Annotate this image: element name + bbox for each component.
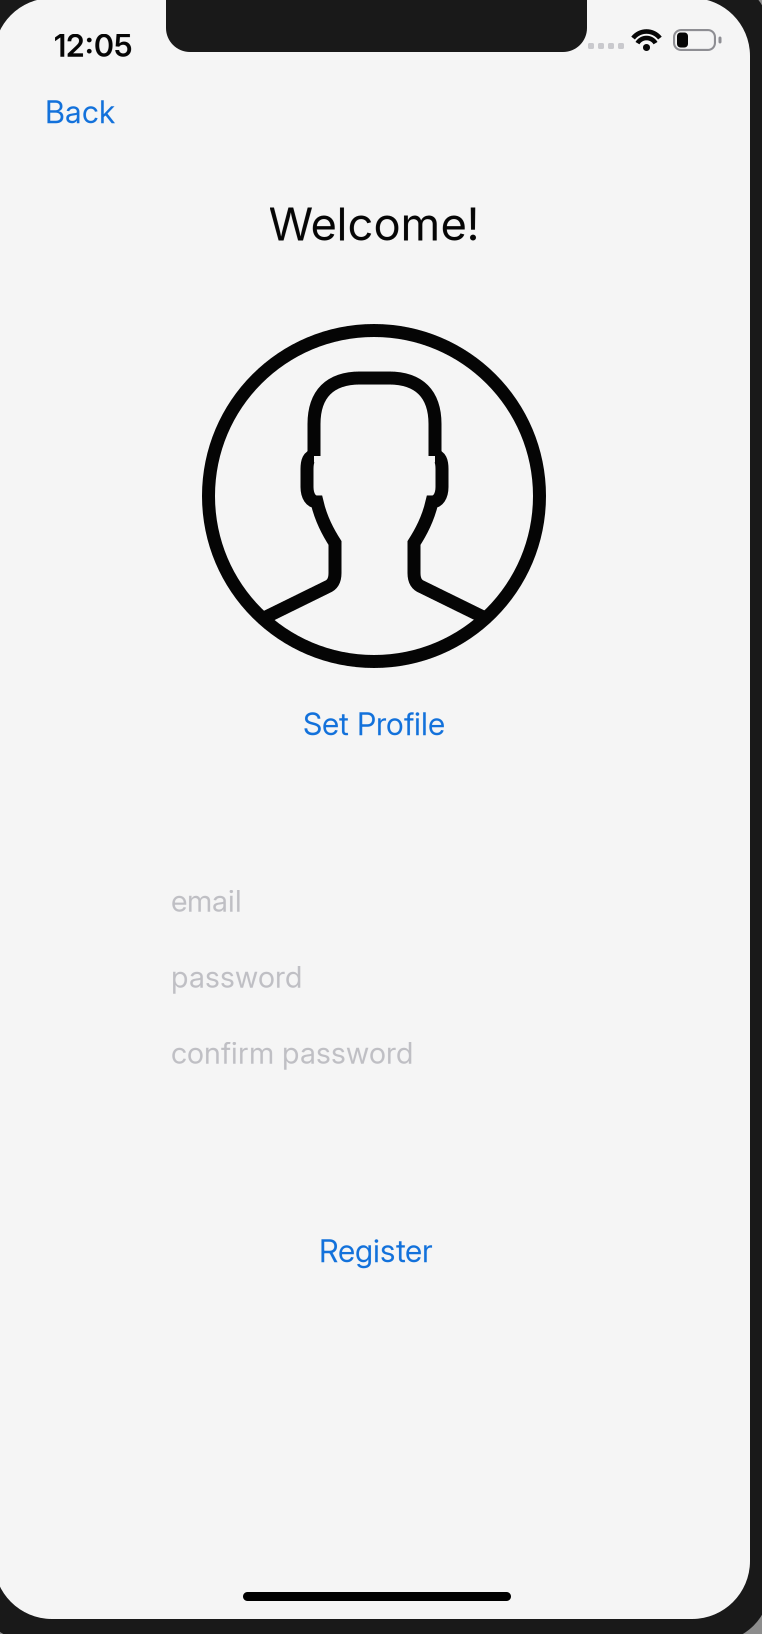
staticText: Back xyxy=(45,93,115,130)
button[interactable]: Register xyxy=(261,1222,491,1280)
staticText: email xyxy=(171,883,242,919)
staticText: Set Profile xyxy=(303,705,445,742)
button[interactable]: confirm password xyxy=(171,1028,591,1078)
button[interactable]: password xyxy=(171,952,591,1002)
button[interactable]: Set Profile xyxy=(259,696,489,752)
staticText: confirm password xyxy=(171,1035,413,1071)
staticText: password xyxy=(171,959,302,995)
staticText: Register xyxy=(319,1232,433,1269)
button[interactable]: Back xyxy=(45,82,155,142)
staticText: 12:05 xyxy=(54,27,132,64)
staticText: Welcome! xyxy=(268,197,479,251)
button[interactable]: email xyxy=(171,876,591,926)
